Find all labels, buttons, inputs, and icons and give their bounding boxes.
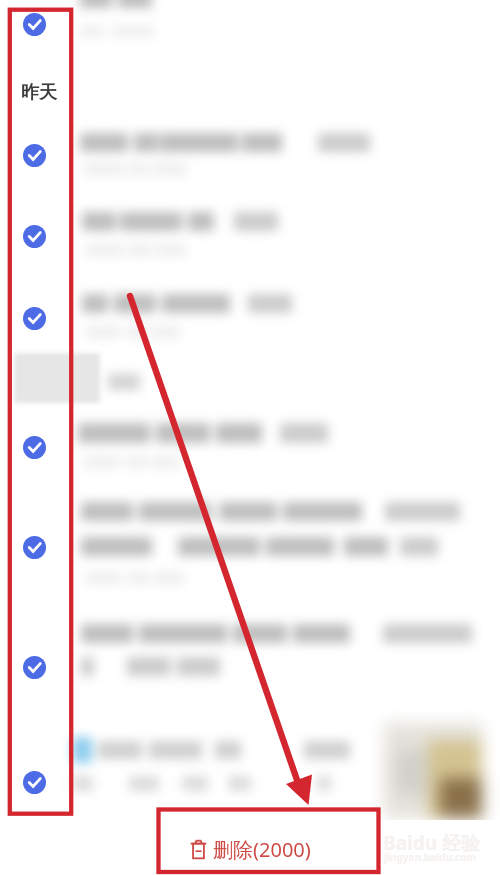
button[interactable]: Selected item checkbox bbox=[23, 225, 46, 248]
staticText: Baidu 经验 bbox=[383, 830, 480, 856]
button[interactable]: Selected item checkbox bbox=[23, 436, 46, 459]
staticText: 删除(2000) bbox=[213, 836, 311, 863]
button[interactable]: Selected item checkbox bbox=[23, 536, 46, 559]
button[interactable]: Selected item checkbox bbox=[23, 144, 46, 167]
button[interactable]: Selected item checkbox bbox=[23, 307, 46, 330]
button[interactable]: 删除(2000) bbox=[0, 820, 500, 875]
button[interactable]: Selected item checkbox bbox=[23, 656, 46, 679]
button[interactable]: Selected item checkbox bbox=[23, 771, 46, 794]
staticText: 昨天 bbox=[21, 81, 57, 104]
button[interactable]: Selected item checkbox bbox=[23, 13, 46, 36]
staticText: jingyan.baidu.com bbox=[384, 850, 476, 864]
